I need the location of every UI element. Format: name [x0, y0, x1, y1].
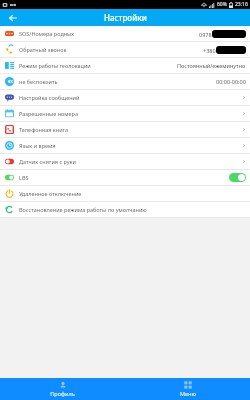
button[interactable]: Режим работы геолокации: [0, 58, 250, 74]
button[interactable]: Восстановление режима работы по умолчани…: [0, 202, 250, 218]
staticText: Постоянный/ежеминутно: [177, 62, 246, 69]
button[interactable]: Профиль: [0, 378, 125, 400]
button[interactable]: Back: [0, 9, 26, 26]
staticText: 60%: [217, 1, 227, 8]
button[interactable]: LBS toggle: [229, 173, 246, 182]
staticText: Настройки: [104, 12, 147, 23]
button[interactable]: Разрешенные номера: [0, 106, 250, 122]
button[interactable]: Меню: [125, 378, 250, 400]
staticText: Язык и время: [19, 142, 238, 149]
staticText: Профиль: [50, 390, 75, 397]
button[interactable]: Настройка сообщений: [0, 90, 250, 106]
staticText: Режим работы геолокации: [19, 62, 177, 69]
staticText: 00:00-00:00: [216, 78, 246, 85]
staticText: LBS: [19, 174, 229, 181]
staticText: Телефонная книга: [19, 126, 238, 133]
staticText: Разрешенные номера: [19, 110, 238, 117]
staticText: Удаленное отключение: [19, 190, 246, 197]
button[interactable]: Датчик снятия с руки: [0, 154, 250, 170]
staticText: Восстановление режима работы по умолчани…: [19, 206, 246, 213]
button[interactable]: Обратный звонок: [0, 42, 250, 58]
button[interactable]: SOS/Номера родных: [0, 26, 250, 42]
staticText: Настройка сообщений: [19, 94, 238, 101]
button[interactable]: Телефонная книга: [0, 122, 250, 138]
staticText: SOS/Номера родных: [19, 30, 199, 37]
button[interactable]: LBS: [0, 170, 250, 186]
button[interactable]: Язык и время: [0, 138, 250, 154]
button[interactable]: не беспокоить: [0, 74, 250, 90]
staticText: 23:16: [235, 1, 248, 8]
staticText: Датчик снятия с руки: [19, 158, 238, 165]
staticText: Меню: [180, 390, 196, 397]
staticText: Обратный звонок: [19, 46, 203, 53]
button[interactable]: Удаленное отключение: [0, 186, 250, 202]
staticText: +380: [203, 47, 216, 54]
staticText: 0978: [199, 31, 212, 38]
staticText: не беспокоить: [19, 78, 216, 85]
